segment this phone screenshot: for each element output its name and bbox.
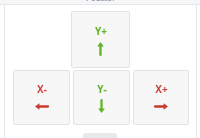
- button[interactable]: X+: [133, 70, 189, 125]
- staticText: Y-: [97, 82, 107, 96]
- staticText: Y+: [95, 24, 107, 38]
- staticText: X-: [37, 82, 47, 96]
- button[interactable]: Y-: [73, 70, 130, 125]
- staticText: X+: [155, 82, 168, 96]
- staticText: Control: [86, 0, 115, 1]
- button[interactable]: X-: [13, 70, 70, 125]
- button[interactable]: Y+: [71, 11, 130, 68]
